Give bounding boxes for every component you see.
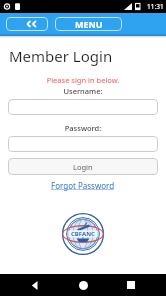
button[interactable]: Back: [22, 274, 48, 296]
button[interactable]: Login: [8, 158, 158, 175]
button[interactable]: Forgot Password: [48, 179, 118, 192]
button[interactable]: Back: [6, 17, 48, 31]
staticText: Password:: [0, 123, 166, 133]
button[interactable]: [8, 136, 158, 152]
button[interactable]: MENU: [55, 17, 122, 31]
staticText: Please sign in below.: [0, 75, 166, 85]
staticText: 11:31: [147, 2, 164, 11]
staticText: Member Login: [9, 46, 113, 66]
staticText: CBFANC: [71, 230, 95, 238]
staticText: Username:: [0, 86, 166, 96]
staticText: MENU: [75, 18, 103, 30]
button[interactable]: Home: [70, 274, 96, 296]
staticText: Forgot Password: [51, 180, 115, 191]
button[interactable]: Recents: [118, 274, 144, 296]
staticText: Login: [73, 162, 93, 172]
button[interactable]: [8, 99, 158, 115]
